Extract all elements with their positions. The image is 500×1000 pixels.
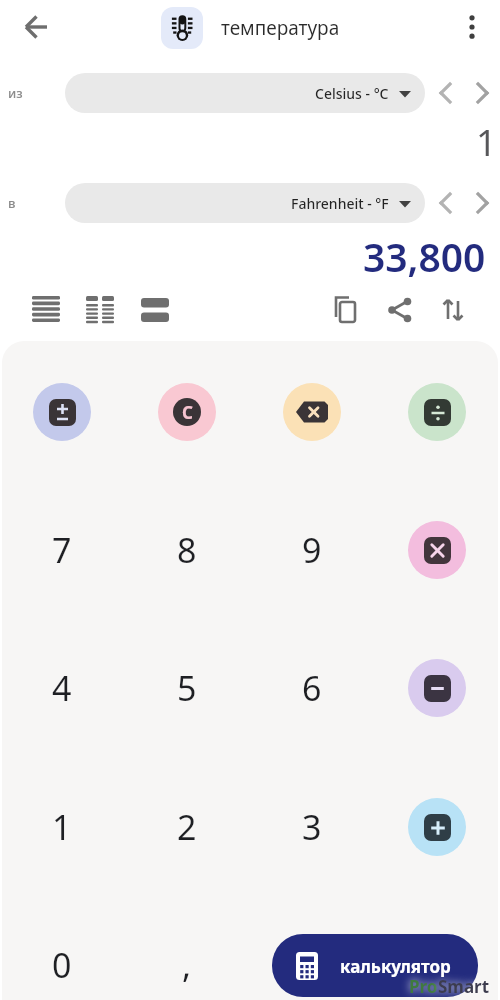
staticText: 9 xyxy=(302,527,322,573)
button[interactable]: Fahrenheit - °F xyxy=(65,183,425,223)
staticText: Celsius - °C xyxy=(315,84,389,103)
button[interactable] xyxy=(80,290,120,330)
button[interactable] xyxy=(408,521,466,579)
button[interactable] xyxy=(33,383,91,441)
button[interactable] xyxy=(135,290,175,330)
button[interactable]: 0 xyxy=(27,930,97,1000)
button[interactable] xyxy=(408,798,466,856)
staticText: 5 xyxy=(177,665,197,711)
staticText: 7 xyxy=(52,527,72,573)
button[interactable] xyxy=(452,5,492,49)
staticText: из xyxy=(8,84,23,102)
staticText: , xyxy=(182,942,192,988)
button[interactable] xyxy=(431,183,461,223)
button[interactable] xyxy=(14,5,58,49)
button[interactable]: 4 xyxy=(27,653,97,723)
staticText: 1 xyxy=(52,804,72,850)
button[interactable]: Celsius - °C xyxy=(65,73,425,113)
button[interactable]: C xyxy=(158,383,216,441)
staticText: 6 xyxy=(302,665,322,711)
button[interactable] xyxy=(467,73,497,113)
button[interactable]: , xyxy=(152,930,222,1000)
staticText: Fahrenheit - °F xyxy=(291,194,389,213)
button[interactable]: 3 xyxy=(277,792,347,862)
staticText: Pro xyxy=(409,975,438,998)
staticText: калькулятор xyxy=(340,955,451,978)
button[interactable]: 9 xyxy=(277,515,347,585)
staticText: 33,800 xyxy=(363,230,486,280)
button[interactable]: калькулятор xyxy=(272,934,478,997)
staticText: C xyxy=(182,401,193,424)
button[interactable] xyxy=(283,383,341,441)
button[interactable] xyxy=(431,73,461,113)
staticText: 2 xyxy=(177,804,197,850)
button[interactable]: 5 xyxy=(152,653,222,723)
button[interactable]: 6 xyxy=(277,653,347,723)
button[interactable] xyxy=(408,659,466,717)
button[interactable]: 7 xyxy=(27,515,97,585)
button[interactable]: 8 xyxy=(152,515,222,585)
button[interactable] xyxy=(325,290,365,330)
staticText: 3 xyxy=(302,804,322,850)
staticText: 1 xyxy=(476,118,497,162)
staticText: в xyxy=(8,194,16,212)
button[interactable] xyxy=(433,290,473,330)
staticText: 8 xyxy=(177,527,197,573)
button[interactable]: 2 xyxy=(152,792,222,862)
staticText: Smart xyxy=(438,975,490,998)
staticText: 4 xyxy=(52,665,72,711)
staticText: температура xyxy=(221,15,340,41)
button[interactable]: 1 xyxy=(27,792,97,862)
button[interactable] xyxy=(380,290,420,330)
staticText: 0 xyxy=(52,942,72,988)
button[interactable]: температура xyxy=(161,7,340,49)
button[interactable] xyxy=(26,290,66,330)
button[interactable] xyxy=(408,383,466,441)
button[interactable] xyxy=(467,183,497,223)
